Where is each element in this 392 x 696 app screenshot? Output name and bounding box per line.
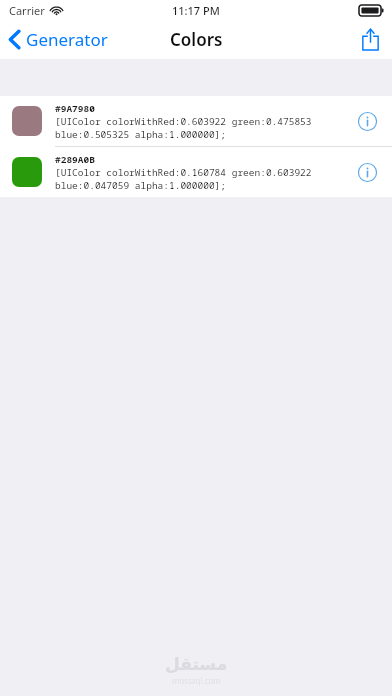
staticText: مستقل	[165, 654, 228, 674]
staticText: mostaql.com	[172, 675, 221, 686]
button[interactable]: More info	[350, 104, 384, 138]
staticText: Generator	[26, 28, 108, 51]
button[interactable]: More info	[350, 155, 384, 189]
staticText: blue:0.505325 alpha:1.000000];	[55, 128, 227, 141]
button[interactable]: #9A7980	[0, 96, 392, 146]
staticText: Carrier	[9, 3, 45, 18]
staticText: 11:17 PM	[172, 3, 220, 18]
staticText: #289A0B	[55, 153, 95, 166]
button[interactable]: #289A0B	[0, 147, 392, 197]
staticText: [UIColor colorWithRed:0.160784 green:0.6…	[55, 166, 312, 179]
staticText: [UIColor colorWithRed:0.603922 green:0.4…	[55, 115, 312, 128]
staticText: Colors	[170, 28, 223, 51]
staticText: blue:0.047059 alpha:1.000000];	[55, 179, 227, 192]
staticText: #9A7980	[55, 102, 95, 115]
button[interactable]: Share	[348, 20, 392, 59]
button[interactable]: Generator	[0, 20, 118, 59]
